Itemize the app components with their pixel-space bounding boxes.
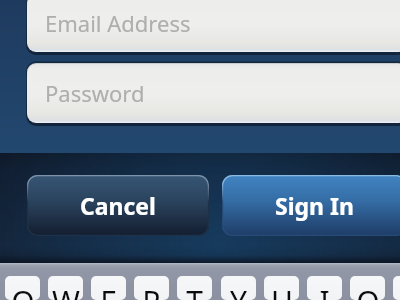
staticText: O	[356, 281, 380, 300]
button[interactable]: Q	[5, 276, 40, 300]
button[interactable]: W	[48, 276, 83, 300]
button[interactable]: Y	[221, 276, 256, 300]
staticText: E	[100, 281, 117, 300]
staticText: Sign In	[275, 190, 354, 221]
staticText: T	[186, 281, 203, 300]
button[interactable]: R	[134, 276, 169, 300]
button[interactable]: E	[91, 276, 126, 300]
button[interactable]: Cancel	[27, 175, 209, 236]
button[interactable]: I	[307, 276, 342, 300]
button[interactable]: O	[350, 276, 385, 300]
staticText: R	[142, 281, 161, 300]
staticText: Password	[45, 78, 145, 108]
button[interactable]: Sign In	[222, 175, 400, 236]
staticText: Email Address	[45, 8, 191, 38]
button[interactable]: P	[393, 276, 400, 300]
staticText: Q	[11, 281, 35, 300]
staticText: I	[319, 281, 330, 300]
button[interactable]: U	[264, 276, 299, 300]
staticText: Cancel	[80, 190, 156, 221]
button[interactable]: Password	[27, 63, 400, 123]
staticText: W	[52, 281, 80, 300]
staticText: U	[271, 281, 293, 300]
button[interactable]: Email Address	[27, 0, 400, 52]
staticText: Y	[230, 281, 247, 300]
button[interactable]: T	[177, 276, 212, 300]
